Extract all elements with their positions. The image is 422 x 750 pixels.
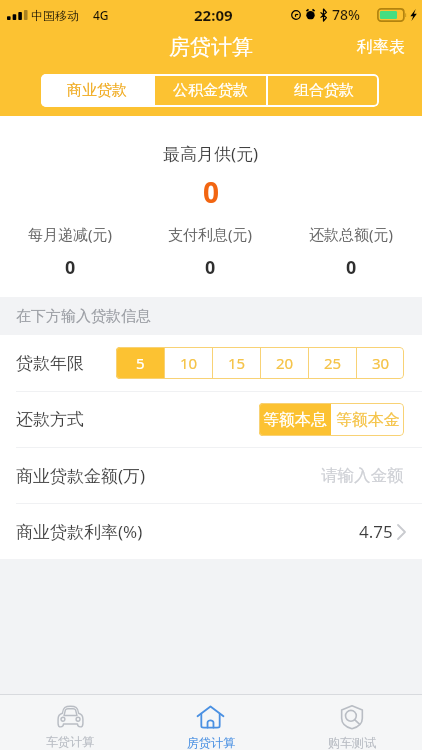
staticText: 还款总额(元) — [309, 224, 394, 244]
button[interactable]: 等额本金 — [331, 403, 404, 436]
staticText: 等额本金 — [336, 410, 400, 430]
staticText: 0 — [346, 255, 357, 280]
staticText: 等额本息 — [263, 410, 327, 430]
staticText: 公积金贷款 — [173, 81, 248, 100]
button[interactable]: 购车测试 — [281, 695, 422, 750]
staticText: 22:09 — [194, 5, 233, 25]
staticText: 5 — [136, 353, 145, 373]
staticText: 10 — [180, 353, 198, 373]
button[interactable]: 5 — [116, 347, 164, 379]
staticText: 30 — [372, 353, 390, 373]
button[interactable]: 组合贷款 — [268, 74, 379, 107]
staticText: 还款方式 — [16, 409, 84, 430]
staticText: 4.75 — [359, 520, 393, 543]
staticText: 贷款年限 — [16, 353, 84, 374]
staticText: 4G — [93, 7, 109, 23]
staticText: 在下方输入贷款信息 — [16, 307, 151, 326]
staticText: 15 — [228, 353, 246, 373]
staticText: 20 — [276, 353, 294, 373]
staticText: 0 — [203, 173, 220, 211]
button[interactable]: 10 — [165, 347, 212, 379]
staticText: 78% — [332, 5, 360, 24]
button[interactable]: 房贷计算 — [140, 695, 281, 750]
staticText: 商业贷款金额(万) — [16, 464, 146, 487]
staticText: 0 — [65, 255, 76, 280]
staticText: 0 — [205, 255, 216, 280]
button[interactable]: 商业贷款利率(%) — [0, 504, 422, 559]
staticText: 利率表 — [357, 37, 405, 57]
button[interactable]: 25 — [309, 347, 356, 379]
button[interactable]: 商业贷款 — [41, 74, 153, 107]
button[interactable]: 30 — [357, 347, 404, 379]
staticText: 最高月供(元) — [163, 142, 259, 165]
button[interactable]: 等额本息 — [259, 403, 331, 436]
button[interactable]: 公积金贷款 — [155, 74, 266, 107]
staticText: 房贷计算 — [169, 34, 253, 60]
staticText: 商业贷款 — [67, 81, 127, 100]
button[interactable]: 车贷计算 — [0, 695, 140, 750]
button[interactable]: 利率表 — [340, 32, 422, 62]
staticText: 组合贷款 — [294, 81, 354, 100]
button[interactable]: 20 — [261, 347, 308, 379]
staticText: 每月递减(元) — [28, 224, 113, 244]
button[interactable]: 15 — [213, 347, 260, 379]
staticText: 中国移动 — [31, 8, 79, 23]
staticText: 商业贷款利率(%) — [16, 520, 143, 543]
staticText: 25 — [324, 353, 342, 373]
staticText: 房贷计算 — [187, 735, 235, 750]
staticText: 购车测试 — [328, 735, 376, 750]
staticText: 支付利息(元) — [168, 224, 253, 244]
staticText: 车贷计算 — [46, 734, 94, 749]
staticText: 请输入金额 — [321, 465, 404, 486]
